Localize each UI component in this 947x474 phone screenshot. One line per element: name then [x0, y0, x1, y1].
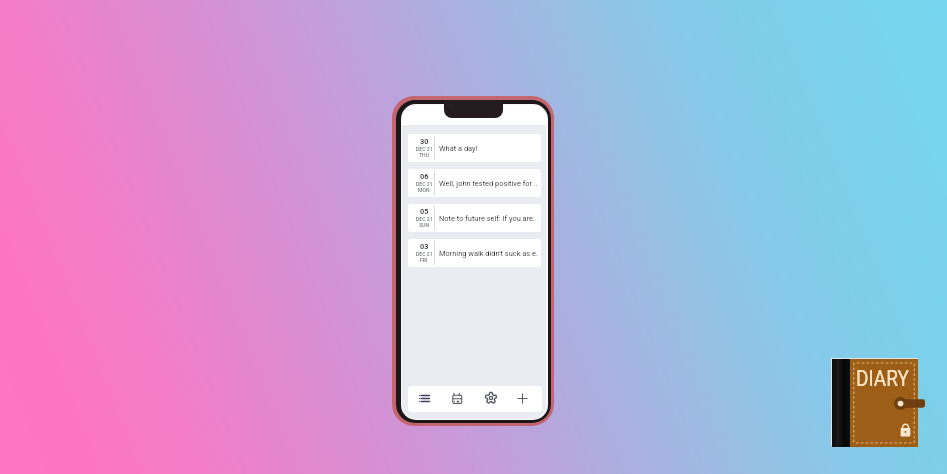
staticText: DEC 21 — [416, 146, 433, 152]
staticText: DEC 21 — [416, 181, 433, 187]
button[interactable]: 06 — [408, 169, 541, 197]
staticText: SUN — [419, 222, 430, 228]
staticText: Well, john tested positive for .. — [439, 179, 538, 188]
button[interactable]: Settings — [474, 386, 507, 412]
staticText: DEC 21 — [416, 251, 433, 257]
button[interactable]: Calendar — [441, 386, 474, 412]
staticText: FRI — [420, 257, 428, 263]
staticText: 30 — [420, 137, 429, 146]
staticText: THU — [419, 152, 430, 158]
button[interactable]: 05 — [408, 204, 541, 232]
staticText: 06 — [420, 172, 429, 181]
button[interactable]: 30 — [408, 134, 541, 162]
button[interactable]: List — [408, 386, 441, 412]
staticText: 05 — [420, 207, 429, 216]
button[interactable]: Add entry — [506, 386, 539, 412]
staticText: DEC 21 — [416, 216, 433, 222]
staticText: What a day! — [439, 144, 478, 153]
staticText: 03 — [420, 242, 429, 251]
staticText: MON — [418, 187, 430, 193]
staticText: Morning walk didn't suck as e.. — [439, 249, 538, 258]
staticText: Note to future self: If you are.. — [439, 214, 537, 223]
button[interactable]: 03 — [408, 239, 541, 267]
staticText: DIARY — [856, 365, 909, 391]
